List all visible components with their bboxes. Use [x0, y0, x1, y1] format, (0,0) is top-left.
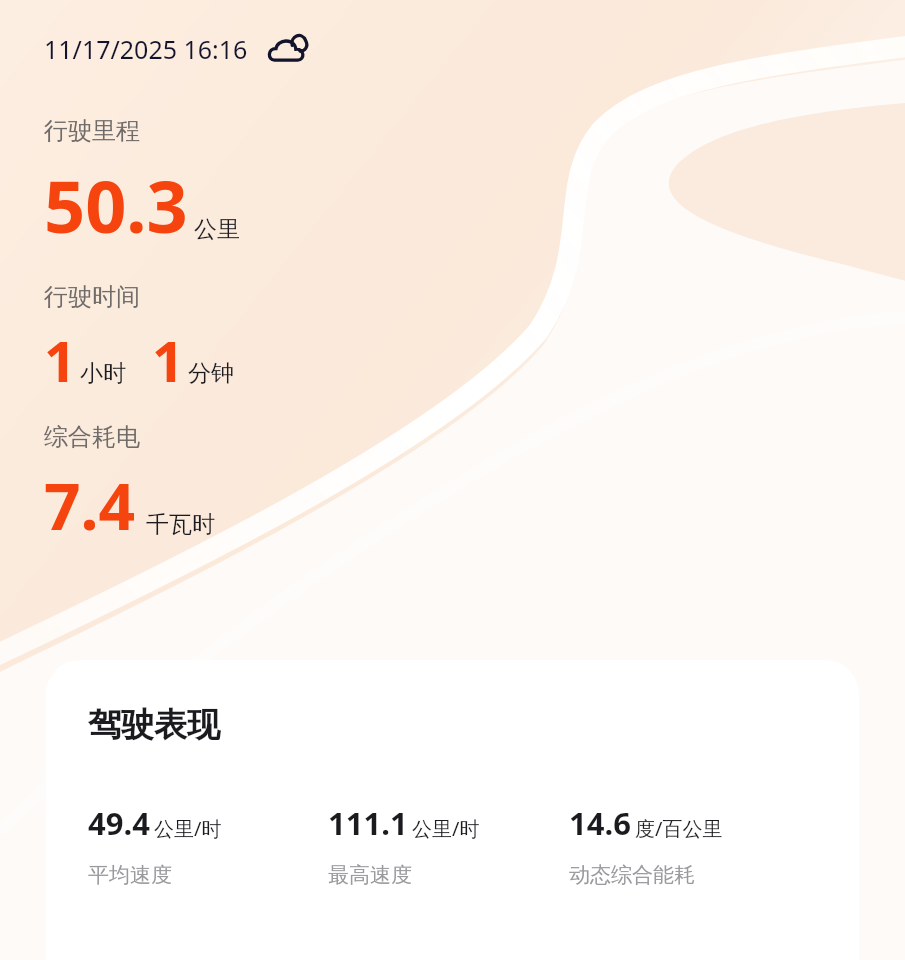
staticText: 公里/时: [154, 815, 222, 842]
staticText: 度/百公里: [635, 815, 723, 842]
staticText: 公里/时: [412, 815, 480, 842]
staticText: 1: [44, 322, 77, 398]
staticText: 平均速度: [88, 862, 172, 888]
staticText: 1: [152, 322, 185, 398]
staticText: 最高速度: [328, 862, 412, 888]
staticText: 11/17/2025 16:16: [44, 32, 248, 66]
staticText: 7.4: [44, 462, 136, 549]
button[interactable]: Weather: cloudy: [268, 26, 314, 72]
staticText: 14.6: [569, 802, 631, 844]
staticText: 小时: [80, 359, 126, 388]
staticText: 49.4: [88, 802, 150, 844]
staticText: 动态综合能耗: [569, 862, 695, 888]
staticText: 50.3: [44, 156, 188, 254]
staticText: 111.1: [328, 802, 408, 844]
staticText: 分钟: [188, 359, 234, 388]
staticText: 公里: [194, 215, 240, 244]
button[interactable]: 49.4: [88, 802, 328, 888]
staticText: 综合耗电: [44, 422, 140, 452]
staticText: 千瓦时: [146, 510, 215, 539]
staticText: 行驶时间: [44, 282, 140, 312]
staticText: 行驶里程: [44, 116, 140, 146]
button[interactable]: 14.6: [569, 802, 829, 888]
button[interactable]: 驾驶表现: [46, 660, 859, 960]
button[interactable]: 111.1: [328, 802, 569, 888]
staticText: 驾驶表现: [88, 704, 220, 746]
